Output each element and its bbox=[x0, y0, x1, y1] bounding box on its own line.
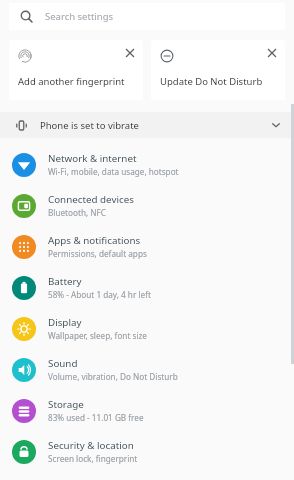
staticText: Bluetooth, NFC bbox=[48, 207, 106, 218]
staticText: Connected devices bbox=[48, 193, 134, 206]
staticText: Display bbox=[48, 316, 82, 329]
button[interactable]: Dismiss bbox=[151, 40, 285, 100]
staticText: Add another fingerprint bbox=[18, 75, 125, 88]
button[interactable]: Network & internet bbox=[0, 144, 294, 185]
staticText: 58% - About 1 day, 4 hr left bbox=[48, 289, 151, 300]
staticText: Sound bbox=[48, 357, 78, 370]
staticText: Screen lock, fingerprint bbox=[48, 453, 138, 464]
staticText: Phone is set to vibrate bbox=[40, 119, 139, 132]
staticText: Security & location bbox=[48, 439, 134, 452]
staticText: Search settings bbox=[45, 10, 114, 23]
staticText: 83% used - 11.01 GB free bbox=[48, 412, 144, 423]
button[interactable]: Sound bbox=[0, 349, 294, 390]
staticText: Wi-Fi, mobile, data usage, hotspot bbox=[48, 166, 179, 177]
button[interactable]: Storage bbox=[0, 390, 294, 431]
button[interactable]: Phone is set to vibrate bbox=[0, 112, 294, 138]
staticText: Wallpaper, sleep, font size bbox=[48, 330, 147, 341]
staticText: Network & internet bbox=[48, 152, 137, 165]
button[interactable]: Display bbox=[0, 308, 294, 349]
button[interactable]: Dismiss bbox=[266, 47, 278, 59]
staticText: Battery bbox=[48, 275, 82, 288]
button[interactable]: Security & location bbox=[0, 431, 294, 472]
staticText: Volume, vibration, Do Not Disturb bbox=[48, 371, 178, 382]
button[interactable]: Battery bbox=[0, 267, 294, 308]
staticText: Permissions, default apps bbox=[48, 248, 147, 259]
button[interactable]: Dismiss bbox=[9, 40, 143, 100]
button[interactable]: Apps & notifications bbox=[0, 226, 294, 267]
staticText: Apps & notifications bbox=[48, 234, 141, 247]
button[interactable]: Connected devices bbox=[0, 185, 294, 226]
button[interactable]: Dismiss bbox=[124, 47, 136, 59]
staticText: Storage bbox=[48, 398, 84, 411]
button[interactable]: Search settings bbox=[9, 3, 285, 30]
staticText: Update Do Not Disturb bbox=[160, 75, 263, 88]
